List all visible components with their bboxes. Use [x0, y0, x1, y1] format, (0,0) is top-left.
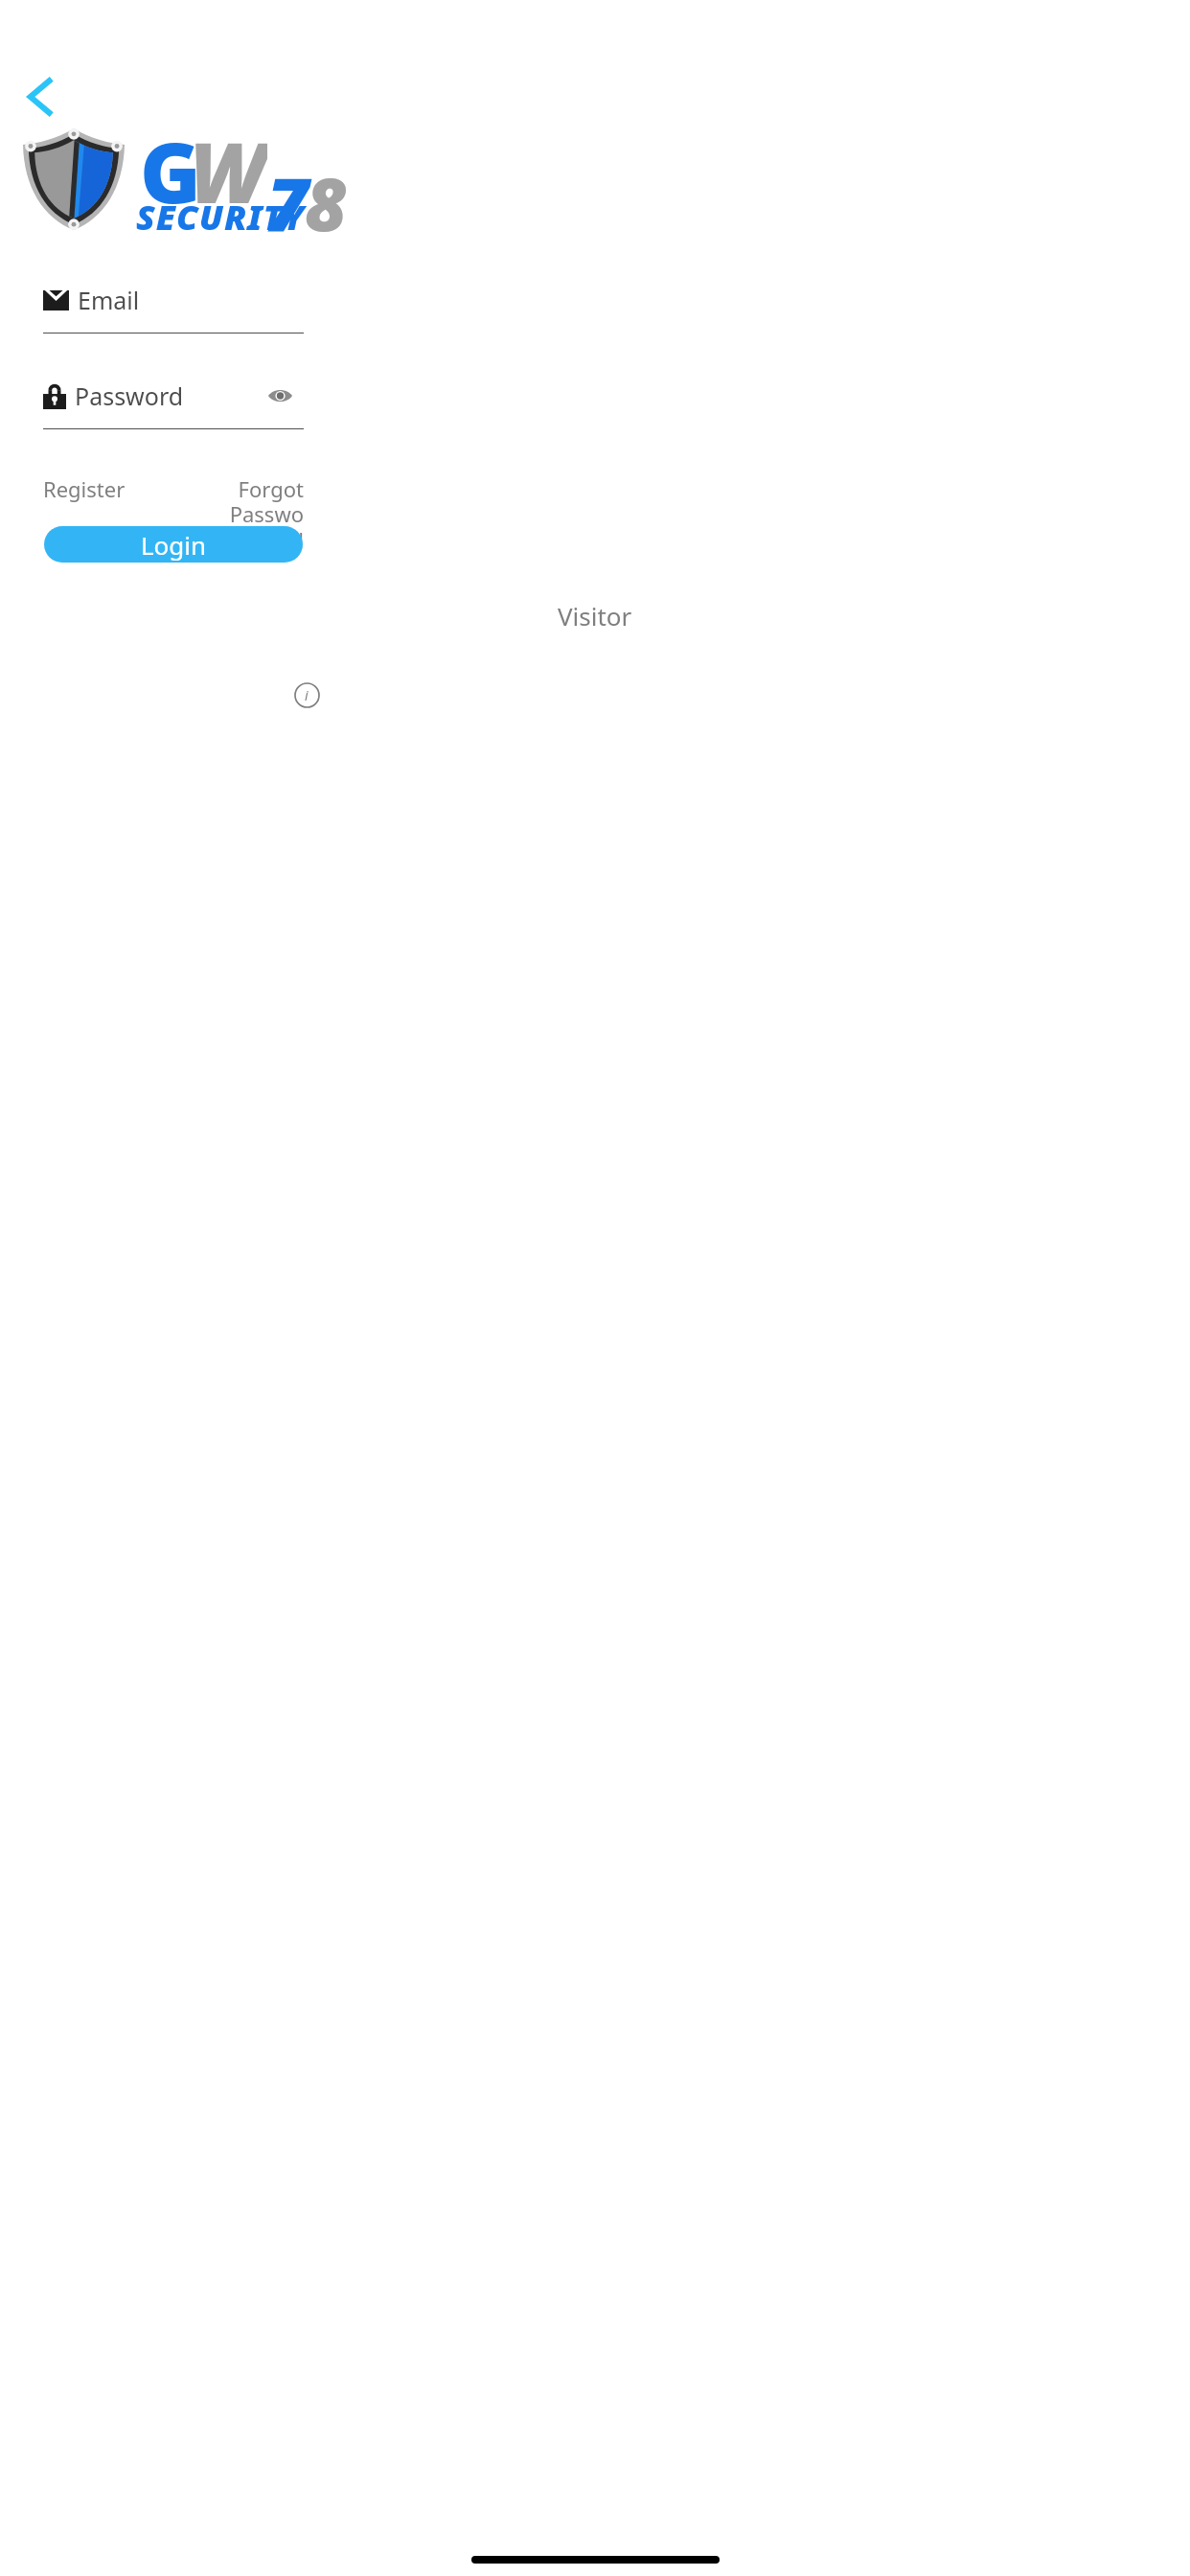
button[interactable]: Information — [289, 678, 324, 712]
staticText: G — [140, 115, 201, 226]
staticText: Email — [78, 284, 140, 316]
staticText: W — [190, 115, 267, 226]
staticText: SECURITY — [136, 194, 306, 241]
staticText: 7 — [266, 153, 309, 253]
button[interactable]: Forgot Password — [223, 471, 304, 558]
staticText: Visitor — [558, 599, 632, 632]
staticText: Login — [141, 528, 207, 562]
button[interactable]: Password — [43, 376, 304, 416]
staticText: 8 — [305, 153, 348, 253]
button[interactable]: Email — [43, 280, 304, 320]
button[interactable]: Show password — [262, 378, 298, 414]
staticText: Password — [75, 379, 184, 412]
button[interactable]: Visitor — [537, 594, 653, 637]
staticText: Register — [43, 474, 126, 503]
button[interactable]: Login — [44, 526, 303, 563]
button[interactable]: Register — [43, 471, 126, 506]
staticText: i — [305, 686, 309, 704]
button[interactable]: Back — [11, 69, 67, 125]
staticText: Forgot Password — [223, 474, 304, 555]
